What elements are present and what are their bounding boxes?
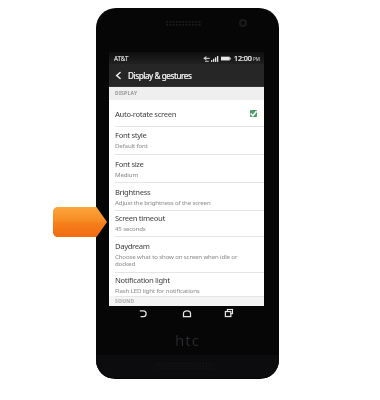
button[interactable]: Screen timeout (109, 210, 264, 235)
staticText: Screen timeout (115, 213, 165, 223)
staticText: Notification light (115, 275, 170, 285)
staticText: Default font (115, 141, 148, 149)
staticText: DISPLAY (115, 90, 138, 97)
staticText: Adjust the brightness of the screen (115, 198, 211, 206)
button[interactable]: Brightness (109, 182, 264, 211)
button[interactable]: Font size (109, 154, 264, 182)
staticText: 12:00 (234, 53, 252, 63)
staticText: Auto-rotate screen (115, 109, 177, 119)
button[interactable]: Font style (109, 126, 264, 153)
staticText: Flash LED light for notifications (115, 286, 200, 294)
staticText: Font style (115, 130, 147, 140)
button[interactable]: Back (137, 307, 149, 319)
staticText: PM (253, 56, 260, 62)
staticText: htc (175, 330, 200, 348)
button[interactable]: Recent apps (223, 307, 235, 319)
other: Back (109, 64, 128, 87)
staticText: 45 seconds (115, 224, 146, 232)
button[interactable]: Notification light (109, 272, 264, 296)
button[interactable]: Back (109, 64, 264, 87)
staticText: Display & gestures (128, 70, 192, 81)
button[interactable]: Daydream (109, 236, 264, 272)
staticText: Medium (115, 170, 138, 178)
staticText: AT&T (114, 54, 129, 62)
button[interactable]: Home (181, 307, 193, 319)
staticText: SOUND (115, 298, 135, 305)
staticText: Choose what to show on screen when idle … (115, 252, 238, 268)
staticText: Font size (115, 159, 144, 169)
staticText: Daydream (115, 241, 150, 251)
staticText: Brightness (115, 187, 151, 197)
button[interactable]: Auto-rotate screen (109, 100, 264, 127)
